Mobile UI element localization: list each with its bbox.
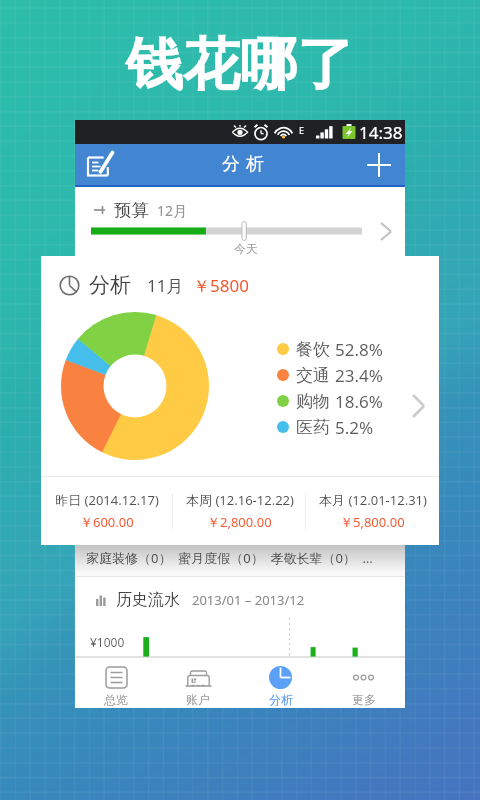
button[interactable]: 更多 [322,666,405,708]
staticText: ￥600.00 [80,513,134,531]
staticText: 总览 [104,692,128,707]
button[interactable]: 本月 (12.01-12.31) [306,489,439,533]
button[interactable]: 预算 [75,187,405,260]
staticText: ￥5800 [193,274,249,297]
staticText: 本月 (12.01-12.31) [319,491,427,509]
staticText: 今天 [234,241,258,256]
staticText: 12月 [157,201,188,220]
staticText: 预算 [114,200,149,221]
staticText: ￥2,800.00 [207,513,272,531]
button[interactable]: Add [362,148,396,182]
staticText: 购物 [296,391,330,412]
button[interactable]: New record [83,147,117,181]
staticText: 餐饮 [296,339,330,360]
staticText: 更多 [352,692,376,707]
button[interactable]: 总览 [75,666,157,708]
staticText: 分析 [219,153,267,176]
staticText: 23.4% [335,364,383,387]
staticText: 历史流水 [116,590,180,610]
staticText: 钱花哪了 [126,29,354,101]
staticText: 分析 [269,692,293,707]
staticText: 账户 [186,692,210,707]
staticText: 交通 [296,365,330,386]
button[interactable]: 昨日 (2014.12.17) [41,489,173,533]
staticText: E [299,124,305,136]
staticText: 家庭装修（0） 蜜月度假（0） 孝敬长辈（0） … [86,549,373,567]
staticText: 52.8% [335,338,383,361]
staticText: ¥1000 [90,634,125,650]
staticText: 14:38 [359,121,403,144]
staticText: 2013/01 – 2013/12 [192,591,305,609]
staticText: 5.2% [335,416,374,439]
button[interactable]: 本周 (12.16-12.22) [173,489,306,533]
staticText: 分析 [89,272,131,298]
staticText: 医药 [296,417,330,438]
staticText: 昨日 (2014.12.17) [55,491,159,509]
staticText: ￥5,800.00 [340,513,405,531]
staticText: 11月 [147,274,184,297]
staticText: 18.6% [335,390,383,413]
staticText: 本周 (12.16-12.22) [186,491,294,509]
button[interactable]: 账户 [157,666,239,708]
button[interactable]: 分析 [239,666,322,708]
